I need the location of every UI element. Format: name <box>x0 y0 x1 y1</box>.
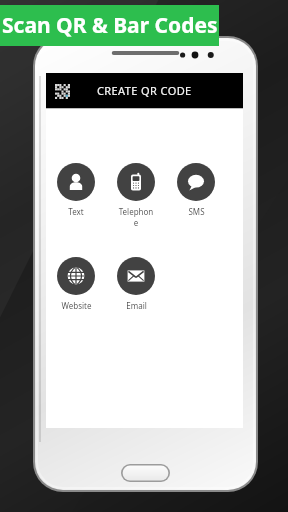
staticText: Text <box>68 206 84 217</box>
staticText: Website <box>61 300 92 311</box>
button[interactable]: Home <box>121 464 170 482</box>
staticText: Telephone <box>117 206 155 228</box>
button[interactable]: Website <box>57 257 95 311</box>
button[interactable]: Telephone <box>117 163 155 228</box>
staticText: SMS <box>188 206 205 217</box>
staticText: Email <box>126 300 147 311</box>
button[interactable]: Email <box>117 257 155 311</box>
button[interactable]: Scan QR & Bar Codes <box>0 5 219 46</box>
button[interactable]: Text <box>57 163 95 217</box>
button[interactable]: SMS <box>177 163 215 217</box>
staticText: CREATE QR CODE <box>97 83 192 98</box>
button[interactable]: QR code <box>53 82 71 100</box>
staticText: Scan QR & Bar Codes <box>2 11 218 40</box>
